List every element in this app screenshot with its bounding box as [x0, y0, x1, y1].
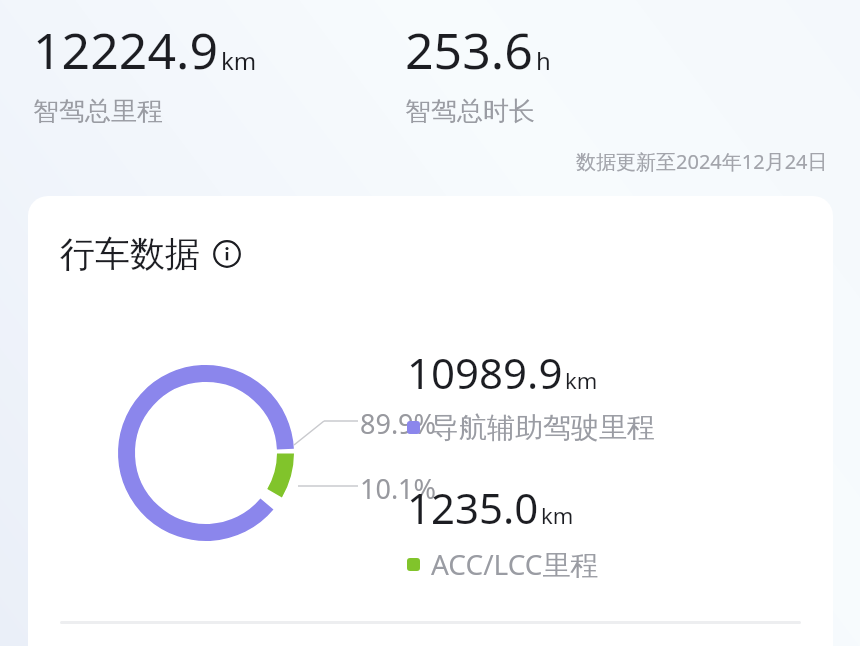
button[interactable]: 12224.9	[33, 16, 257, 128]
staticText: km	[541, 500, 574, 530]
staticText: 行车数据	[60, 232, 200, 276]
staticText: 10.1%	[360, 470, 437, 507]
staticText: 导航辅助驾驶里程	[431, 410, 655, 445]
staticText: km	[221, 44, 257, 77]
button[interactable]: 10989.9	[407, 344, 655, 445]
staticText: 12224.9	[33, 16, 218, 84]
staticText: h	[536, 44, 551, 77]
staticText: 智驾总里程	[33, 95, 163, 128]
staticText: 数据更新至2024年12月24日	[576, 148, 828, 175]
staticText: 89.9%	[360, 405, 437, 442]
staticText: 253.6	[405, 16, 533, 84]
button[interactable]: 行车数据	[28, 196, 833, 646]
button[interactable]: 关于行车数据	[213, 240, 241, 268]
button[interactable]: 1235.0	[407, 479, 599, 583]
staticText: 智驾总时长	[405, 95, 535, 128]
staticText: ACC/LCC里程	[431, 545, 599, 583]
button[interactable]: 253.6	[405, 16, 551, 128]
button[interactable]: 行车数据	[60, 232, 241, 276]
staticText: km	[565, 365, 598, 395]
staticText: 10989.9	[407, 344, 563, 401]
staticText: 1235.0	[407, 479, 539, 536]
